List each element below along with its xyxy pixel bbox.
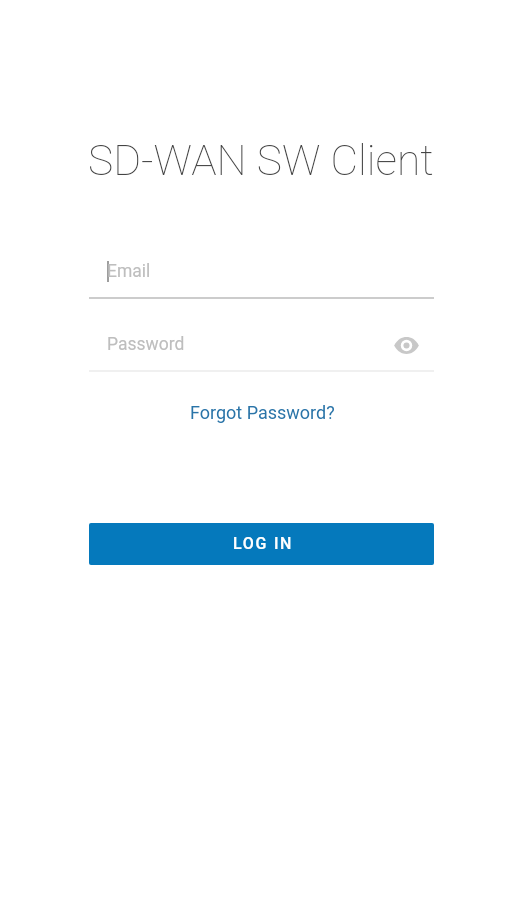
button[interactable]: Email [89,253,434,299]
button[interactable]: LOG IN [89,523,434,565]
button[interactable]: Show password [389,328,423,362]
staticText: Forgot Password? [190,402,335,423]
staticText: Email [107,261,151,282]
staticText: SD-WAN SW Client [88,136,434,186]
staticText: Password [107,334,185,355]
staticText: LOG IN [233,534,294,553]
button[interactable]: Forgot Password? [178,394,347,431]
button[interactable]: Password [89,326,434,372]
